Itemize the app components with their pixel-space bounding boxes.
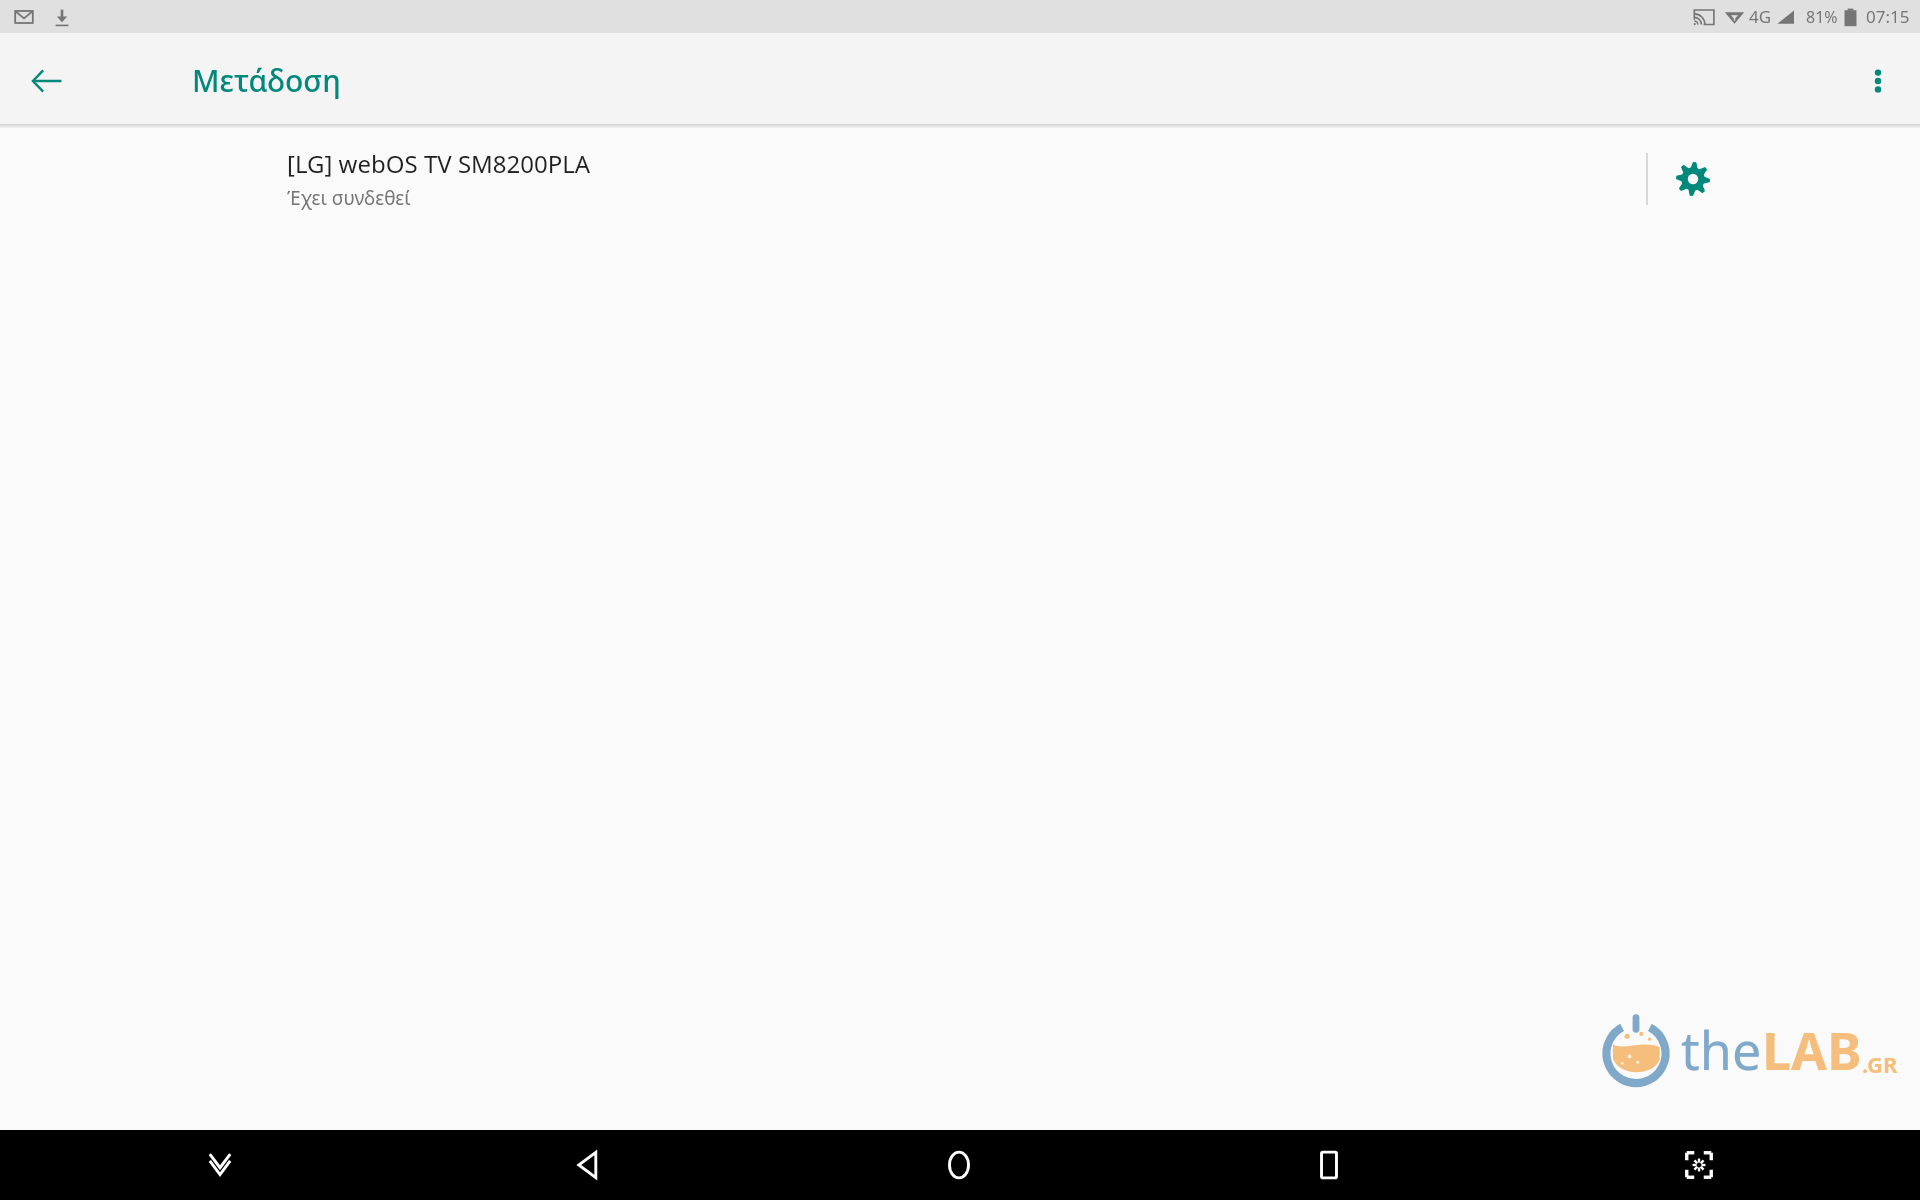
button[interactable]: More options	[1848, 51, 1908, 111]
staticText: LAB	[1762, 1014, 1862, 1085]
button[interactable]: Back	[18, 52, 76, 110]
button[interactable]: Back	[554, 1130, 624, 1200]
staticText: 07:15	[1866, 5, 1910, 28]
button[interactable]: Hide navigation bar	[185, 1130, 255, 1200]
staticText: 81%	[1806, 6, 1838, 28]
staticText: Μετάδοση	[192, 60, 341, 101]
staticText: .GR	[1862, 1049, 1898, 1079]
button[interactable]: Home	[924, 1130, 994, 1200]
button[interactable]: Recent apps	[1294, 1130, 1364, 1200]
button[interactable]: Shrink screen	[1664, 1130, 1734, 1200]
staticText: Έχει συνδεθεί	[287, 185, 411, 211]
staticText: 4G	[1749, 5, 1772, 28]
staticText: the	[1681, 1014, 1762, 1085]
button[interactable]: [LG] webOS TV SM8200PLA	[0, 128, 1920, 230]
button[interactable]: Settings	[1662, 148, 1724, 210]
staticText: [LG] webOS TV SM8200PLA	[287, 147, 591, 180]
